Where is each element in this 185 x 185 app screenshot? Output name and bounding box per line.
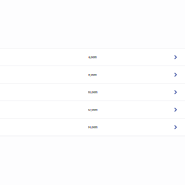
button[interactable]: 6,00m: [0, 49, 185, 66]
staticText: 12,00m: [73, 103, 112, 116]
button[interactable]: 12,00m: [0, 101, 185, 118]
button[interactable]: 8,00m: [0, 66, 185, 83]
staticText: 8,00m: [75, 68, 109, 81]
button[interactable]: 14,00m: [0, 119, 185, 136]
staticText: 14,00m: [73, 121, 112, 134]
staticText: 6,00m: [76, 51, 109, 64]
staticText: 10,00m: [73, 86, 112, 99]
button[interactable]: 10,00m: [0, 84, 185, 101]
